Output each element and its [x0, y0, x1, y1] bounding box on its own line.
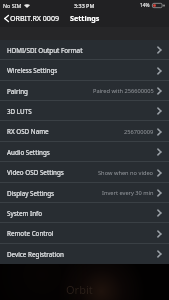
button[interactable]: Device Registration [0, 244, 169, 264]
staticText: Invert every 30 min [102, 189, 154, 197]
staticText: 256700009 [124, 128, 154, 136]
button[interactable]: Audio Settings [0, 142, 169, 162]
staticText: Audio Settings [7, 148, 50, 157]
button[interactable]: HDMI/SDI Output Format [0, 40, 169, 60]
button[interactable]: Video OSD Settings [0, 162, 169, 183]
staticText: Settings [70, 13, 100, 23]
staticText: Device Registration [7, 250, 64, 259]
button[interactable]: Pairing [0, 81, 169, 101]
staticText: Paired with 256600005 [93, 87, 154, 95]
button[interactable]: RX OSD Name [0, 121, 169, 142]
staticText: 3:33 PM [74, 2, 95, 9]
staticText: No SIM [3, 2, 22, 9]
button[interactable]: 3D LUTS [0, 101, 169, 121]
staticText: Video OSD Settings [7, 168, 64, 177]
staticText: Remote Control [7, 229, 54, 238]
staticText: Wireless Settings [7, 66, 58, 75]
staticText: RX OSD Name [7, 127, 49, 136]
staticText: System Info [7, 209, 43, 218]
button[interactable]: System Info [0, 203, 169, 223]
button[interactable]: Wireless Settings [0, 60, 169, 81]
staticText: Show when no video [98, 169, 154, 177]
button[interactable]: Display Settings [0, 183, 169, 203]
staticText: 3D LUTS [7, 107, 32, 116]
staticText: Display Settings [7, 189, 55, 198]
staticText: ORBIT.RX 0009 [10, 13, 60, 23]
staticText: 14% [140, 2, 150, 9]
button[interactable]: ORBIT.RX 0009 [0, 11, 64, 27]
staticText: Pairing [7, 87, 28, 96]
staticText: HDMI/SDI Output Format [7, 46, 83, 55]
staticText: Orbit [66, 282, 93, 297]
button[interactable]: Remote Control [0, 223, 169, 244]
